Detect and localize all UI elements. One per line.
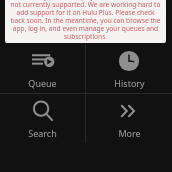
staticText: Search	[28, 127, 57, 139]
button[interactable]: More	[86, 94, 172, 143]
button[interactable]: We're sorry, but video playback on this …	[5, 0, 166, 43]
other: History	[118, 50, 140, 72]
button[interactable]: History	[86, 44, 172, 93]
staticText: History	[114, 77, 145, 89]
staticText: Queue	[28, 77, 57, 89]
button[interactable]: Search	[0, 94, 85, 143]
staticText: We're sorry, but video playback on this …	[9, 0, 162, 41]
staticText: More	[118, 127, 141, 139]
other: Search	[31, 99, 55, 123]
other: More	[117, 99, 141, 123]
other: Queue	[31, 49, 55, 73]
button[interactable]: Queue	[0, 44, 85, 93]
